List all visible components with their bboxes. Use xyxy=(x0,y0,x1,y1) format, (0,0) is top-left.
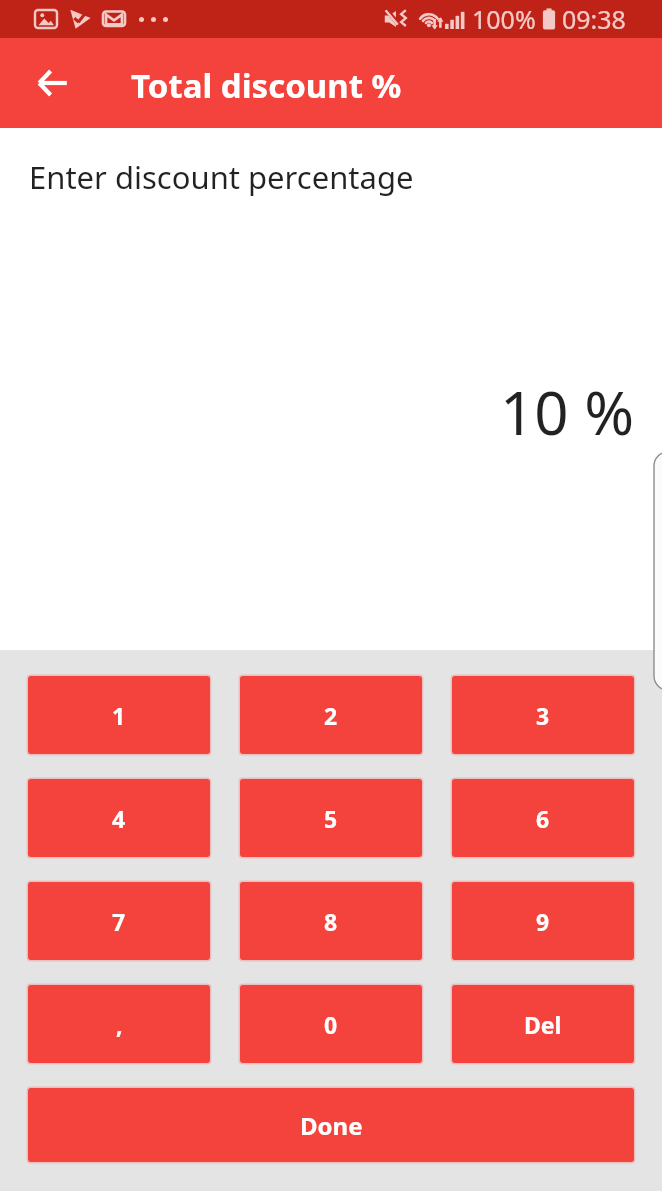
button[interactable]: 0 xyxy=(240,985,422,1063)
staticText: Done xyxy=(300,1109,363,1142)
staticText: Del xyxy=(524,1009,562,1040)
staticText: 1 xyxy=(112,700,126,731)
button[interactable]: 4 xyxy=(28,779,210,857)
staticText: Total discount % xyxy=(131,63,402,108)
staticText: , xyxy=(116,1009,123,1040)
staticText: 8 xyxy=(324,906,338,937)
staticText: 7 xyxy=(112,906,126,937)
button[interactable]: , xyxy=(28,985,210,1063)
button[interactable]: 1 xyxy=(28,676,210,754)
staticText: 2 xyxy=(324,700,338,731)
staticText: 6 xyxy=(536,803,550,834)
button[interactable]: Done xyxy=(28,1088,634,1162)
button[interactable]: 10 % xyxy=(500,371,635,453)
staticText: 9 xyxy=(536,906,550,937)
staticText: 0 xyxy=(324,1009,338,1040)
button[interactable]: 7 xyxy=(28,882,210,960)
staticText: Enter discount percentage xyxy=(29,156,414,198)
button[interactable]: Back xyxy=(23,54,81,112)
button[interactable]: Del xyxy=(452,985,634,1063)
staticText: 100% xyxy=(472,2,536,36)
button[interactable]: 6 xyxy=(452,779,634,857)
staticText: 3 xyxy=(536,700,550,731)
staticText: 10 % xyxy=(500,371,635,453)
button[interactable]: 5 xyxy=(240,779,422,857)
staticText: 4 xyxy=(112,803,126,834)
staticText: 09:38 xyxy=(562,2,626,36)
button[interactable]: 2 xyxy=(240,676,422,754)
button[interactable]: 9 xyxy=(452,882,634,960)
button[interactable]: 8 xyxy=(240,882,422,960)
staticText: 5 xyxy=(324,803,338,834)
button[interactable]: 3 xyxy=(452,676,634,754)
